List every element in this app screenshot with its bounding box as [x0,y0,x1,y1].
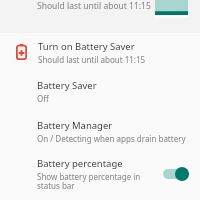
staticText: Off [37,93,49,104]
staticText: Battery percentage [37,157,123,170]
button[interactable]: Battery percentage [0,151,200,197]
button[interactable]: Battery percentage toggle [162,164,190,184]
button[interactable]: Battery Manager [0,111,200,151]
staticText: On / Detecting when apps drain battery [37,133,186,144]
other: Battery Saver [16,44,27,60]
staticText: Battery Manager [37,119,113,132]
staticText: Should last until about 11:15 [38,54,146,65]
staticText: Battery Saver [37,79,97,92]
staticText: Should last until about 11:15 [37,0,151,12]
button[interactable]: Battery Saver [0,33,200,71]
staticText: Show battery percentage in status bar [37,171,141,192]
button[interactable]: Should last until about 11:15 [0,0,200,33]
button[interactable]: Battery Saver [0,71,200,111]
staticText: Turn on Battery Saver [38,40,135,53]
